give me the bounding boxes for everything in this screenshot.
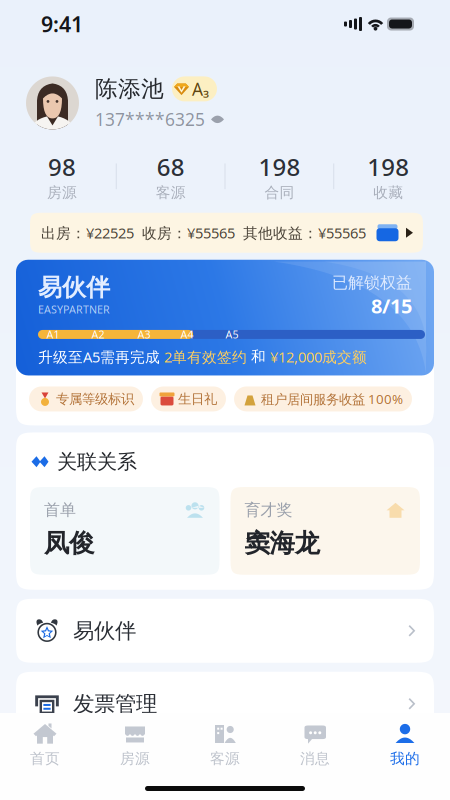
button[interactable]: 发票管理 [16,672,434,736]
button[interactable]: 育才奖 [230,487,420,575]
staticText: 8/15 [371,292,412,319]
staticText: EASYPARTNER [38,302,110,316]
staticText: 易伙伴 [38,273,110,302]
staticText: 陈添池 [95,75,164,103]
button[interactable]: 198 [334,151,442,202]
staticText: 我的 [390,749,420,767]
button[interactable]: 房源 [90,717,180,771]
staticText: 升级至A5需再完成 [38,347,164,366]
staticText: A2 [91,327,104,342]
staticText: 68 [157,151,185,183]
button[interactable]: 98 [8,151,116,202]
staticText: 198 [367,151,409,183]
staticText: 已解锁权益 [332,273,412,292]
staticText: A5 [225,327,238,342]
staticText: 合同 [264,184,294,202]
staticText: 窦海龙 [244,528,319,559]
staticText: 凤俊 [44,528,94,559]
staticText: 客源 [210,749,240,767]
staticText: 首页 [30,749,60,767]
staticText: A4 [180,327,193,342]
staticText: 98 [48,151,76,183]
button[interactable]: 198 [225,151,333,202]
staticText: 出房：¥22525 收房：¥55565 其他收益：¥55565 [41,223,366,242]
staticText: 房源 [120,749,150,767]
button[interactable]: 易伙伴 [16,260,434,375]
button[interactable]: 易伙伴 [16,599,434,663]
staticText: 137****6325 [95,108,205,131]
staticText: 收藏 [373,184,403,202]
staticText: 关联关系 [57,449,137,474]
staticText: 育才奖 [244,500,292,520]
button[interactable]: 首单 [30,487,219,575]
staticText: ¥12,000成交额 [270,347,367,366]
staticText: 租户居间服务收益 100% [261,390,403,408]
staticText: 发票管理 [73,691,157,717]
button[interactable]: 68 [117,151,225,202]
button[interactable]: 我的 [360,717,450,771]
button[interactable]: 首页 [0,717,90,771]
staticText: 9:41 [41,10,83,38]
staticText: 生日礼 [178,391,217,407]
staticText: 2单有效签约 [164,347,247,366]
button[interactable]: 出房：¥22525 收房：¥55565 其他收益：¥55565 [30,213,423,253]
staticText: 客源 [156,184,186,202]
staticText: 专属等级标识 [56,391,134,407]
staticText: 房源 [47,184,77,202]
button[interactable]: 客源 [180,717,270,771]
staticText: 消息 [300,749,330,767]
staticText: A3 [137,327,150,342]
button[interactable]: 消息 [270,717,360,771]
staticText: A1 [46,327,59,342]
staticText: A₃ [192,77,209,100]
staticText: 首单 [44,500,76,520]
staticText: 易伙伴 [73,618,136,644]
staticText: 198 [258,151,300,183]
staticText: 和 [247,348,270,366]
